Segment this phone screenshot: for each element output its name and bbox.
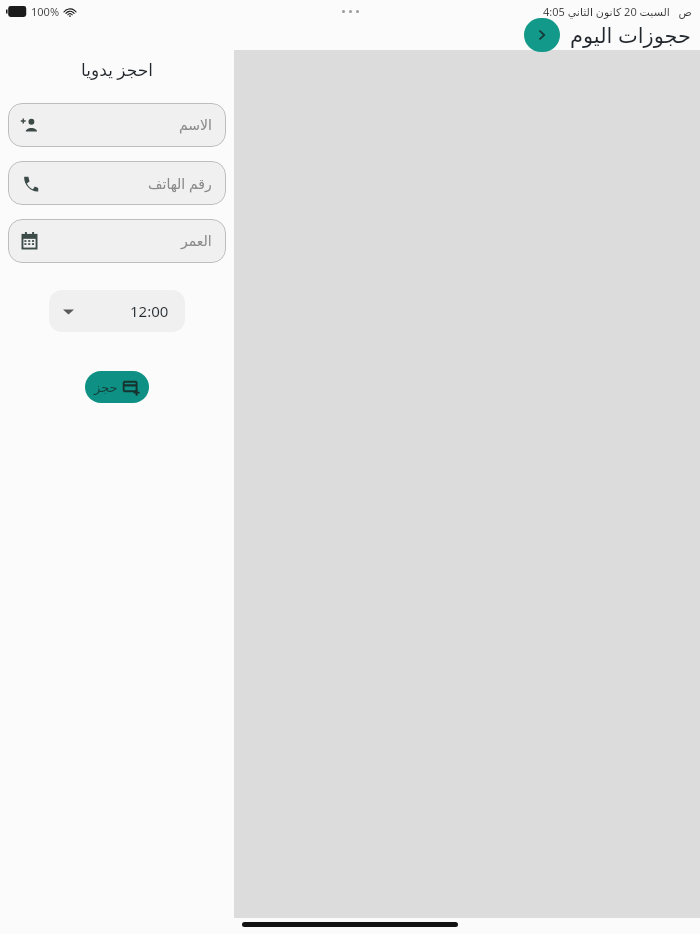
button[interactable]: 12:00 — [49, 290, 185, 332]
staticText: رقم الهاتف — [148, 174, 212, 193]
staticText: 12:00 — [130, 301, 169, 321]
button[interactable]: حجز — [85, 371, 149, 403]
staticText: العمر — [181, 233, 212, 249]
staticText: حجوزات اليوم — [570, 21, 692, 50]
staticText: حجز — [94, 380, 118, 395]
staticText: 4:05 ص السبت 20 كانون الثاني — [543, 4, 692, 19]
staticText: 100% — [31, 4, 60, 19]
button[interactable]: العمر — [8, 219, 226, 263]
button[interactable]: عرض الحجوزات — [524, 18, 560, 52]
button[interactable]: الاسم — [8, 103, 226, 147]
staticText: الاسم — [179, 117, 212, 133]
button[interactable]: رقم الهاتف — [8, 161, 226, 205]
staticText: احجز يدويا — [81, 58, 153, 81]
